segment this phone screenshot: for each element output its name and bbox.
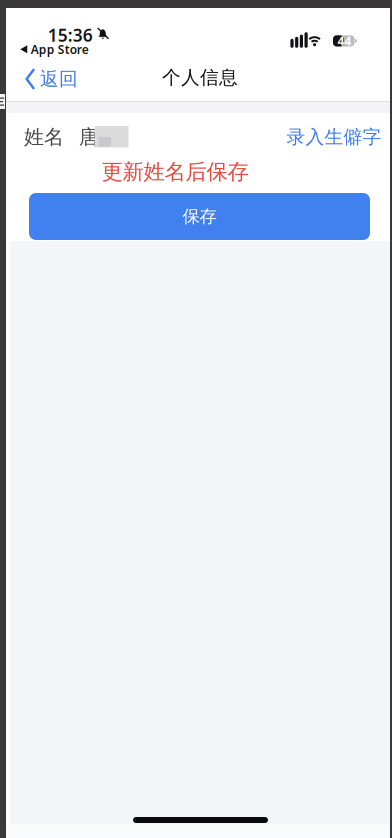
staticText: 保存 bbox=[182, 206, 216, 227]
staticText: 更新姓名后保存 bbox=[101, 159, 248, 185]
staticText: 姓名 bbox=[24, 125, 64, 149]
button[interactable]: 保存 bbox=[29, 193, 370, 240]
staticText: 返回 bbox=[40, 67, 78, 90]
staticText: 44 bbox=[338, 33, 352, 49]
button[interactable]: 返回 bbox=[25, 67, 78, 90]
staticText: 录入生僻字 bbox=[286, 125, 381, 148]
staticText: 个人信息 bbox=[162, 66, 238, 89]
staticText: 15:36 bbox=[48, 23, 93, 46]
button[interactable]: 录入生僻字 bbox=[286, 125, 381, 148]
staticText: App Store bbox=[31, 41, 89, 57]
staticText: 唐 bbox=[79, 125, 99, 149]
